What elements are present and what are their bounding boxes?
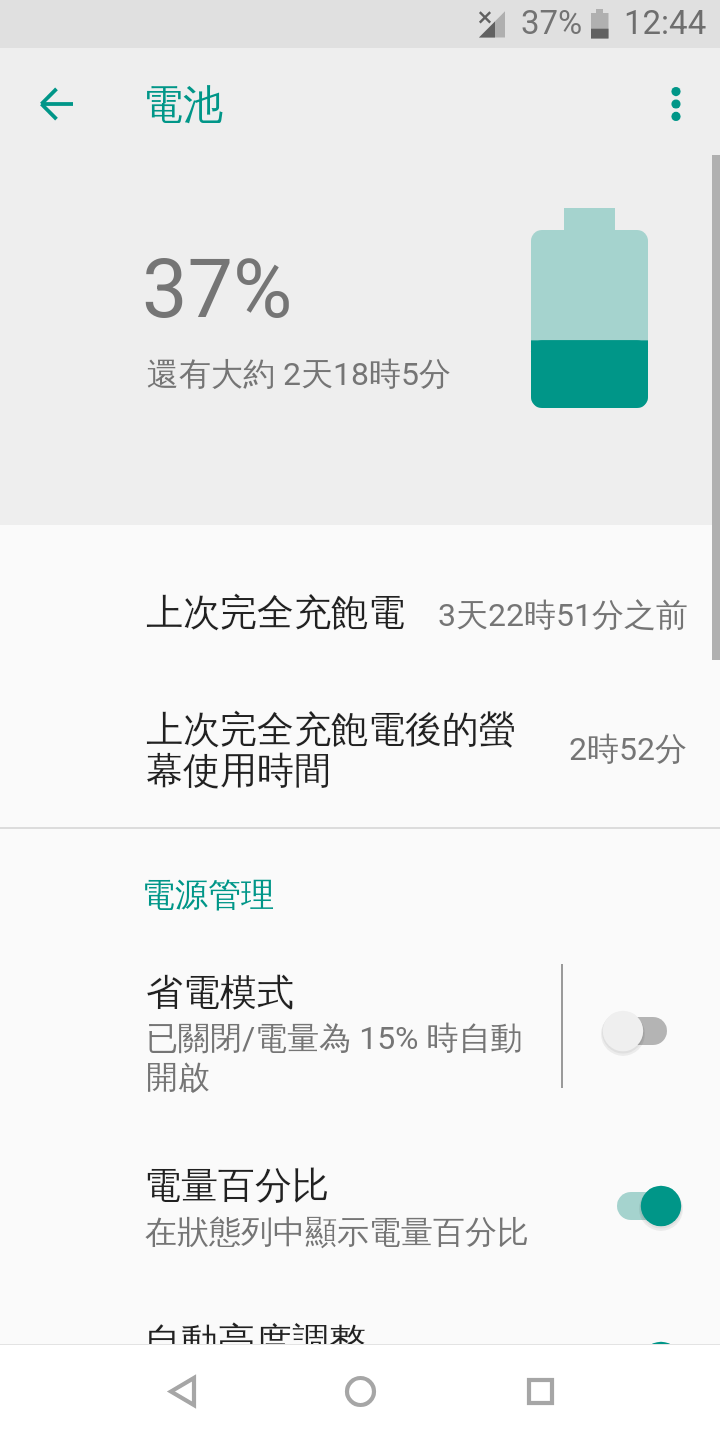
staticText: 自動亮度調整 bbox=[144, 1318, 366, 1365]
staticText: 電源管理 bbox=[142, 874, 274, 916]
staticText: 上次完全充飽電 bbox=[146, 589, 405, 636]
button[interactable]: Back bbox=[25, 72, 89, 136]
staticText: 省電模式 bbox=[146, 969, 294, 1016]
staticText: 37% bbox=[142, 242, 293, 337]
staticText: 12:44 bbox=[624, 3, 707, 42]
button[interactable]: Back bbox=[142, 1351, 222, 1431]
staticText: 電量百分比 bbox=[144, 1162, 329, 1209]
staticText: 37% bbox=[521, 3, 583, 42]
button[interactable]: 上次完全充飽電 bbox=[0, 525, 720, 683]
staticText: 電池 bbox=[143, 79, 223, 129]
staticText: 在狀態列中顯示電量百分比 bbox=[145, 1212, 529, 1252]
button[interactable]: 電量百分比 bbox=[584, 1162, 704, 1250]
button[interactable]: More options bbox=[644, 72, 708, 136]
staticText: 2時52分 bbox=[569, 729, 687, 769]
staticText: 還有大約 2天18時5分 bbox=[147, 354, 451, 394]
button[interactable]: 自動亮度調整 bbox=[0, 1270, 720, 1345]
staticText: 3天22時51分之前 bbox=[438, 595, 688, 635]
button[interactable]: Recents bbox=[500, 1351, 580, 1431]
staticText: 上次完全充飽電後的螢幕使用時間 bbox=[146, 706, 524, 794]
button[interactable]: Home bbox=[320, 1351, 400, 1431]
button[interactable]: 上次完全充飽電後的螢幕使用時間 bbox=[0, 683, 720, 827]
staticText: 已關閉/電量為 15% 時自動開啟 bbox=[146, 1018, 528, 1098]
button[interactable]: 電量百分比 bbox=[0, 1115, 720, 1270]
button[interactable]: 省電模式 bbox=[0, 930, 720, 1115]
button[interactable]: 省電模式 bbox=[580, 987, 700, 1075]
button[interactable]: 自動亮度調整 bbox=[584, 1320, 704, 1345]
